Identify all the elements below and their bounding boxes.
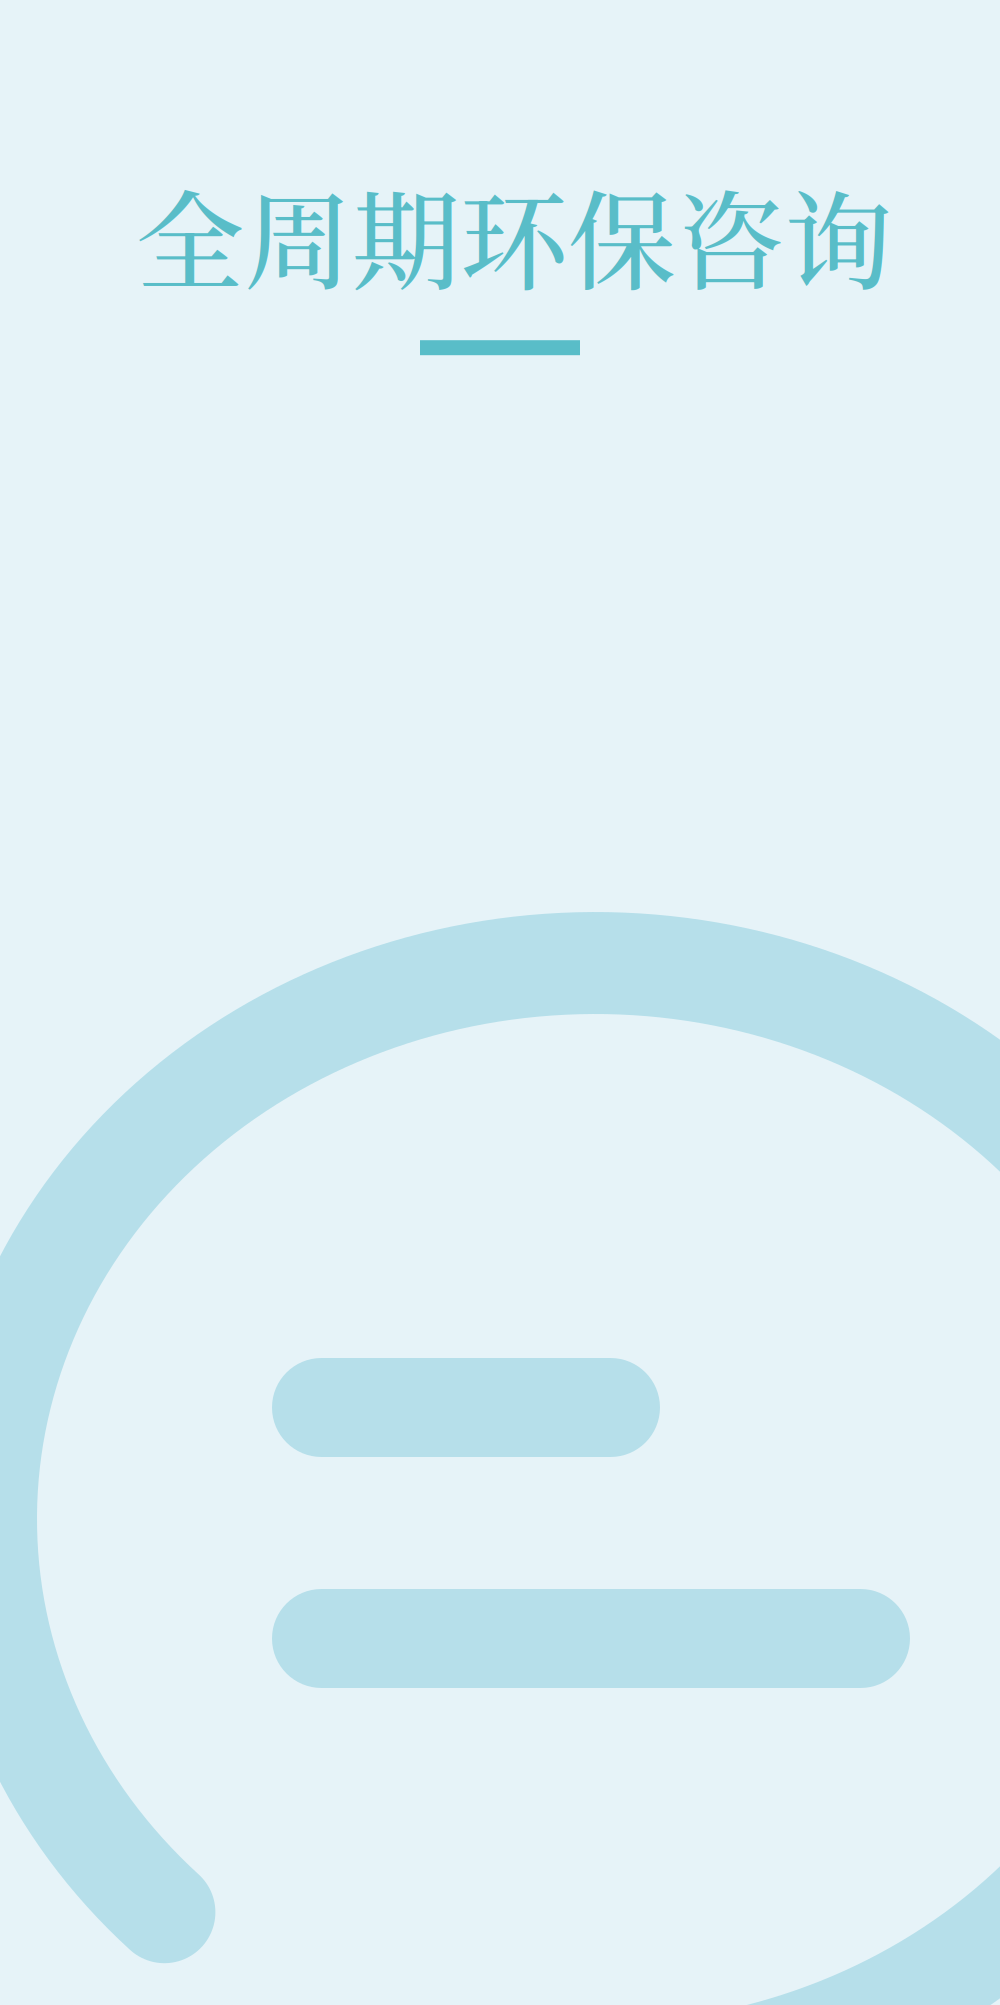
staticText: 全周期环保咨询	[136, 157, 892, 312]
